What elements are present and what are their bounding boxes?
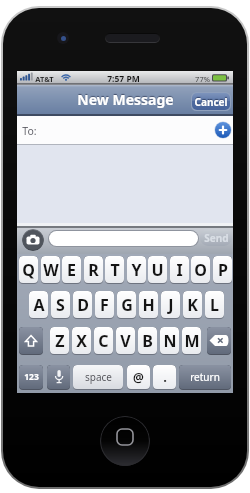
button[interactable]: To: <box>17 116 233 145</box>
button[interactable]: V <box>116 327 135 355</box>
button[interactable]: U <box>148 256 167 284</box>
button[interactable]: A <box>29 291 48 319</box>
button[interactable]: @ <box>127 365 150 390</box>
staticText: . <box>163 368 167 386</box>
staticText: space <box>85 370 112 384</box>
staticText: 7:57 PM <box>107 73 140 85</box>
staticText: @ <box>133 369 144 385</box>
button[interactable] <box>47 365 70 390</box>
button[interactable] <box>207 327 231 355</box>
button[interactable]: Q <box>19 256 38 284</box>
staticText: New Message <box>77 90 174 109</box>
staticText: R <box>88 259 99 281</box>
staticText: J <box>168 294 174 316</box>
staticText: C <box>98 330 109 352</box>
staticText: 123 <box>24 371 39 383</box>
button[interactable]: P <box>213 256 232 284</box>
button[interactable]: Z <box>50 327 69 355</box>
button[interactable] <box>22 229 44 251</box>
button[interactable]: J <box>161 291 180 319</box>
staticText: Send <box>204 231 229 245</box>
staticText: AT&T <box>35 74 54 84</box>
staticText: H <box>142 294 155 316</box>
button[interactable]: X <box>72 327 91 355</box>
button[interactable]: H <box>139 291 158 319</box>
button[interactable]: M <box>182 327 201 355</box>
staticText: T <box>110 259 120 281</box>
staticText: S <box>56 294 65 316</box>
button[interactable]: Send <box>200 229 232 246</box>
staticText: L <box>210 294 219 316</box>
staticText: Z <box>55 330 65 352</box>
staticText: G <box>121 294 133 316</box>
button[interactable]: Cancel <box>191 92 231 111</box>
button[interactable]: R <box>84 256 103 284</box>
staticText: A <box>33 294 45 316</box>
staticText: Y <box>131 259 142 281</box>
button[interactable]: K <box>183 291 202 319</box>
staticText: B <box>142 330 153 352</box>
button[interactable] <box>48 230 199 247</box>
button[interactable]: B <box>138 327 157 355</box>
staticText: Q <box>22 259 35 281</box>
button[interactable]: O <box>191 256 210 284</box>
staticText: M <box>184 330 200 352</box>
button[interactable]: 123 <box>19 365 43 390</box>
button[interactable] <box>214 121 232 139</box>
staticText: F <box>100 294 109 316</box>
button[interactable]: T <box>105 256 124 284</box>
button[interactable]: Y <box>127 256 146 284</box>
staticText: U <box>151 259 164 281</box>
staticText: W <box>43 259 59 281</box>
staticText: To: <box>22 124 37 138</box>
staticText: V <box>120 330 131 352</box>
button[interactable]: W <box>41 256 60 284</box>
button[interactable]: . <box>153 365 176 390</box>
button[interactable]: D <box>73 291 92 319</box>
staticText: O <box>194 259 207 281</box>
staticText: Cancel <box>194 95 228 109</box>
staticText: X <box>76 330 87 352</box>
staticText: K <box>187 294 198 316</box>
button[interactable] <box>100 416 150 466</box>
button[interactable] <box>19 327 43 355</box>
button[interactable]: E <box>62 256 81 284</box>
button[interactable]: C <box>94 327 113 355</box>
button[interactable]: S <box>51 291 70 319</box>
staticText: P <box>218 259 228 281</box>
button[interactable]: F <box>95 291 114 319</box>
staticText: I <box>176 259 183 281</box>
staticText: 77% <box>195 74 210 84</box>
button[interactable]: I <box>170 256 189 284</box>
staticText: return <box>190 370 220 384</box>
staticText: E <box>67 259 76 281</box>
button[interactable]: N <box>160 327 179 355</box>
button[interactable]: space <box>73 365 123 390</box>
button[interactable]: L <box>205 291 224 319</box>
button[interactable]: G <box>117 291 136 319</box>
staticText: N <box>163 330 177 352</box>
button[interactable]: return <box>179 365 231 390</box>
staticText: D <box>77 294 89 316</box>
